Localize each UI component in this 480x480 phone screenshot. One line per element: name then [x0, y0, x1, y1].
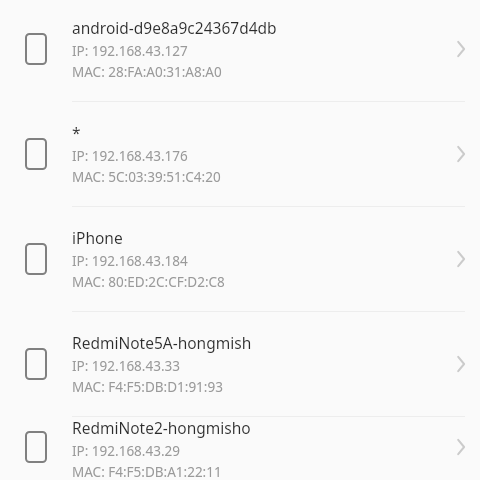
button[interactable]: iPhone: [0, 207, 480, 311]
button[interactable]: Open device details: [442, 102, 480, 206]
staticText: IP: 192.168.43.33: [72, 357, 180, 375]
staticText: MAC: F4:F5:DB:A1:22:11: [72, 463, 222, 477]
staticText: MAC: F4:F5:DB:D1:91:93: [72, 378, 223, 396]
staticText: IP: 192.168.43.127: [72, 42, 188, 60]
staticText: RedmiNote2-hongmisho: [72, 417, 251, 438]
staticText: MAC: 28:FA:A0:31:A8:A0: [72, 63, 222, 81]
staticText: *: [72, 122, 81, 143]
staticText: iPhone: [72, 227, 123, 248]
button[interactable]: Open device details: [442, 417, 480, 477]
button[interactable]: *: [0, 102, 480, 206]
staticText: IP: 192.168.43.29: [72, 442, 180, 460]
button[interactable]: Open device details: [442, 0, 480, 101]
button[interactable]: android-d9e8a9c24367d4db: [0, 0, 480, 101]
staticText: android-d9e8a9c24367d4db: [72, 17, 277, 38]
button[interactable]: RedmiNote2-hongmisho: [0, 417, 480, 477]
staticText: MAC: 5C:03:39:51:C4:20: [72, 168, 221, 186]
staticText: RedmiNote5A-hongmish: [72, 332, 252, 353]
staticText: IP: 192.168.43.184: [72, 252, 188, 270]
staticText: MAC: 80:ED:2C:CF:D2:C8: [72, 273, 225, 291]
button[interactable]: Open device details: [442, 312, 480, 416]
staticText: IP: 192.168.43.176: [72, 147, 188, 165]
button[interactable]: Open device details: [442, 207, 480, 311]
button[interactable]: RedmiNote5A-hongmish: [0, 312, 480, 416]
